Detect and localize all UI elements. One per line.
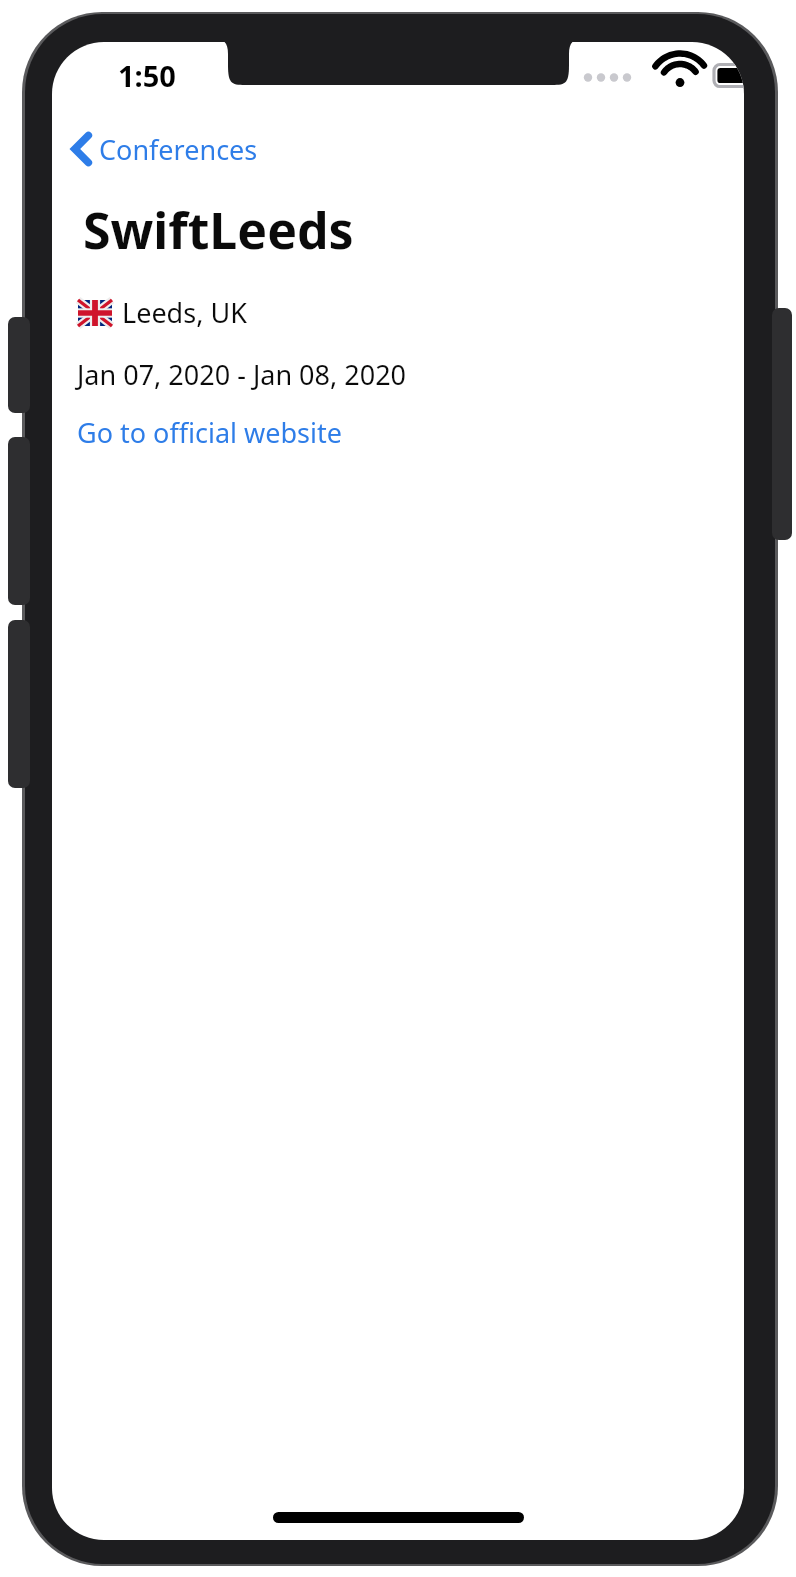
- staticText: Conferences: [99, 131, 258, 168]
- staticText: Leeds, UK: [122, 294, 247, 331]
- button[interactable]: Go to official website: [71, 410, 348, 455]
- button[interactable]: Conferences: [66, 124, 272, 174]
- staticText: SwiftLeeds: [83, 196, 354, 264]
- staticText: Go to official website: [77, 414, 342, 451]
- staticText: Jan 07, 2020 - Jan 08, 2020: [77, 356, 407, 393]
- staticText: 1:50: [118, 56, 176, 95]
